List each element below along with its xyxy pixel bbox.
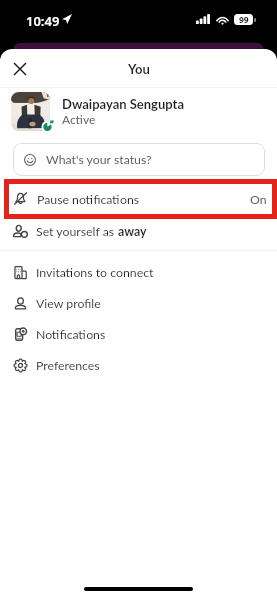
button[interactable]: Preferences (0, 350, 277, 381)
button[interactable]: Pause notifications (4, 179, 277, 219)
button[interactable]: Set yourself as (0, 216, 277, 247)
staticText: 10:49 (26, 12, 60, 30)
button[interactable]: Close (7, 56, 32, 81)
staticText: Notifications (36, 327, 106, 342)
staticText: 99 (239, 14, 249, 25)
button[interactable]: View profile (0, 288, 277, 319)
button[interactable]: Notifications (0, 319, 277, 350)
button[interactable]: Invitations to connect (0, 257, 277, 288)
staticText: View profile (36, 296, 101, 311)
staticText: away (118, 224, 147, 239)
button[interactable]: Dwaipayan Sengupta (0, 88, 277, 134)
staticText: Invitations to connect (36, 265, 154, 280)
staticText: You (128, 61, 150, 77)
staticText: Pause notifications (37, 192, 140, 207)
staticText: What's your status? (46, 152, 152, 167)
button[interactable]: What's your status? (13, 143, 265, 176)
staticText: On (250, 192, 267, 207)
staticText: Set yourself as (36, 224, 118, 239)
staticText: Dwaipayan Sengupta (62, 96, 185, 112)
staticText: Active (62, 112, 96, 126)
staticText: Preferences (36, 358, 100, 373)
